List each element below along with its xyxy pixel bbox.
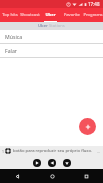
staticText: Música bbox=[5, 33, 23, 40]
button[interactable]: Programs bbox=[82, 8, 103, 22]
button[interactable]: Uber bbox=[40, 8, 61, 22]
staticText: 1 bbox=[2, 149, 4, 154]
button[interactable]: Favorite bbox=[61, 8, 82, 22]
button[interactable]: Shoutcast bbox=[20, 8, 40, 22]
staticText: Falar bbox=[5, 47, 17, 54]
button[interactable]: Recents bbox=[69, 169, 103, 183]
button[interactable]: Download bbox=[62, 158, 72, 168]
staticText: Uber bbox=[38, 23, 48, 29]
staticText: Programs bbox=[83, 12, 103, 18]
staticText: Top hits bbox=[2, 12, 18, 18]
button[interactable]: Add bbox=[79, 118, 96, 135]
button[interactable]: Top hits bbox=[0, 8, 20, 22]
button[interactable]: Música bbox=[0, 30, 103, 43]
button[interactable]: Play bbox=[32, 158, 42, 168]
button[interactable]: 1 bbox=[0, 146, 103, 156]
button[interactable]: Home bbox=[35, 169, 69, 183]
button[interactable]: Back bbox=[0, 169, 35, 183]
staticText: Stations bbox=[49, 23, 65, 29]
staticText: Favorite bbox=[64, 12, 80, 18]
staticText: 17:48 bbox=[88, 1, 100, 7]
staticText: ... bbox=[97, 149, 101, 154]
button[interactable]: Falar bbox=[0, 44, 103, 57]
staticText: Shoutcast bbox=[20, 12, 40, 18]
button[interactable]: Rewind bbox=[47, 158, 57, 168]
staticText: botão para reproduzir seu próprio fluxo. bbox=[13, 148, 97, 154]
staticText: Uber bbox=[45, 12, 56, 18]
